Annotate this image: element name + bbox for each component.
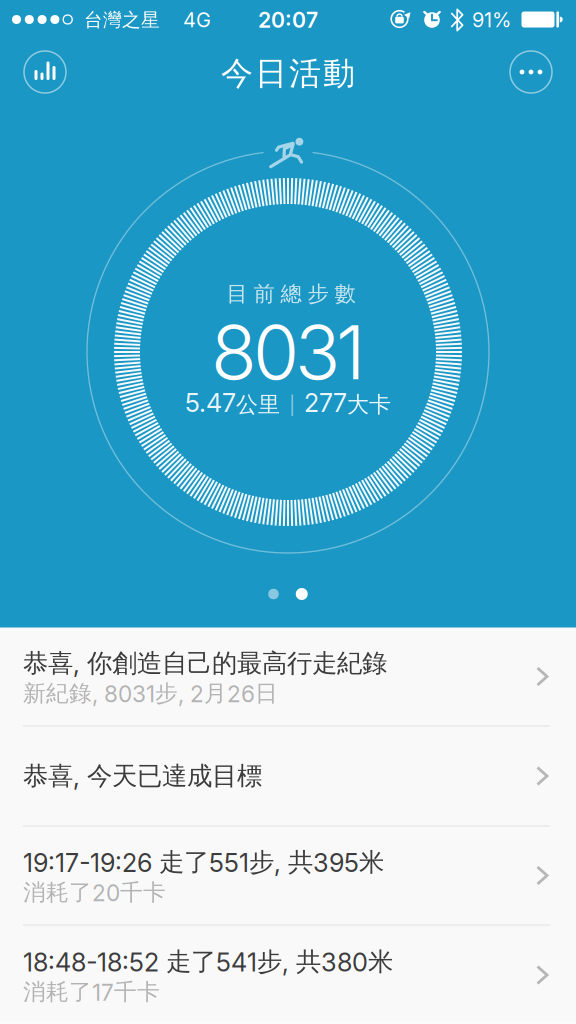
staticText: 20:07 xyxy=(258,7,318,33)
button[interactable]: 恭喜, 今天已達成目標 xyxy=(0,726,576,825)
staticText: 18:48-18:52 走了541步, 共380米 xyxy=(23,946,393,978)
staticText: 277 xyxy=(304,387,347,418)
staticText: 91% xyxy=(472,8,511,32)
staticText: 消耗了20千卡 xyxy=(23,878,166,907)
button[interactable]: More xyxy=(507,48,555,96)
staticText: 4G xyxy=(183,8,211,32)
staticText: 新紀錄, 8031步, 2月26日 xyxy=(23,679,278,708)
staticText: | xyxy=(289,394,295,416)
staticText: 公里 xyxy=(236,391,280,418)
staticText: 19:17-19:26 走了551步, 共395米 xyxy=(23,846,384,878)
staticText: 今日活動 xyxy=(221,53,355,94)
staticText: 目前總步數 xyxy=(226,281,355,307)
staticText: 恭喜, 今天已達成目標 xyxy=(23,760,262,792)
staticText: 消耗了17千卡 xyxy=(23,978,160,1006)
button[interactable]: Statistics xyxy=(21,48,69,96)
staticText: 5.47 xyxy=(185,387,236,418)
staticText: 8031 xyxy=(211,307,365,397)
staticText: 台灣之星 xyxy=(84,8,160,32)
button[interactable]: 恭喜, 你創造自己的最高行走紀錄 xyxy=(0,627,576,725)
button[interactable]: 19:17-19:26 走了551步, 共395米 xyxy=(0,826,576,924)
staticText: 大卡 xyxy=(347,391,391,418)
button[interactable]: 18:48-18:52 走了541步, 共380米 xyxy=(0,925,576,1024)
staticText: 恭喜, 你創造自己的最高行走紀錄 xyxy=(23,647,387,679)
